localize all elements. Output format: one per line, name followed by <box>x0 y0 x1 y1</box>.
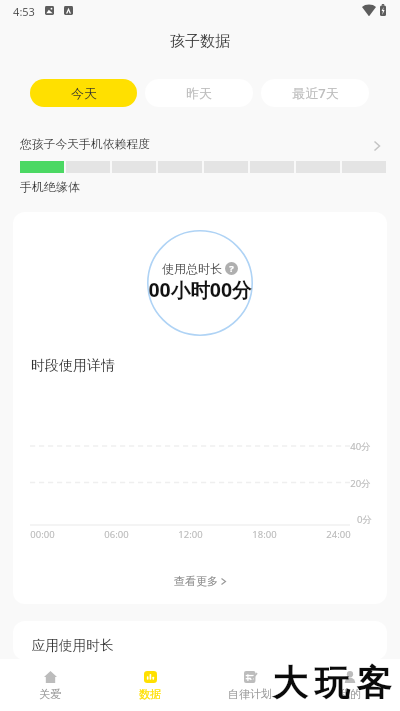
staticText: ? <box>229 262 234 275</box>
staticText: 0分 <box>357 513 372 526</box>
staticText: 关爱 <box>39 687 61 701</box>
staticText: 数据 <box>139 687 161 701</box>
button[interactable]: 您孩子今天手机依赖程度 <box>0 137 400 197</box>
staticText: 06:00 <box>104 528 129 541</box>
staticText: 时段使用详情 <box>31 357 115 375</box>
staticText: 应用使用时长 <box>31 637 114 654</box>
button[interactable]: 今天 <box>30 79 137 107</box>
button[interactable]: 数据 <box>100 659 200 711</box>
staticText: 我的 <box>339 687 361 701</box>
button[interactable]: 应用使用时长 <box>13 621 387 660</box>
staticText: 使用总时长 <box>162 261 222 276</box>
staticText: 20分 <box>350 477 371 490</box>
button[interactable]: 查看更多 <box>13 568 387 594</box>
staticText: 您孩子今天手机依赖程度 <box>20 137 150 152</box>
staticText: 昨天 <box>186 85 212 101</box>
staticText: 查看更多 <box>174 574 218 588</box>
staticText: 今天 <box>71 85 97 101</box>
staticText: 24:00 <box>326 528 351 541</box>
staticText: 00小时00分 <box>135 276 265 303</box>
staticText: 4:53 <box>13 4 35 19</box>
button[interactable]: 我的 <box>300 659 400 711</box>
staticText: 大玩客 <box>269 661 395 705</box>
staticText: 最近7天 <box>292 84 339 102</box>
button[interactable]: 自律计划 <box>200 659 300 711</box>
staticText: 18:00 <box>252 528 277 541</box>
staticText: 12:00 <box>178 528 203 541</box>
button[interactable]: 最近7天 <box>261 79 369 107</box>
staticText: 手机绝缘体 <box>20 179 80 194</box>
staticText: 00:00 <box>30 528 55 541</box>
staticText: 40分 <box>350 440 371 453</box>
button[interactable]: 关爱 <box>0 659 100 711</box>
staticText: 孩子数据 <box>170 32 230 51</box>
button[interactable]: 昨天 <box>145 79 253 107</box>
staticText: 自律计划 <box>228 687 272 701</box>
